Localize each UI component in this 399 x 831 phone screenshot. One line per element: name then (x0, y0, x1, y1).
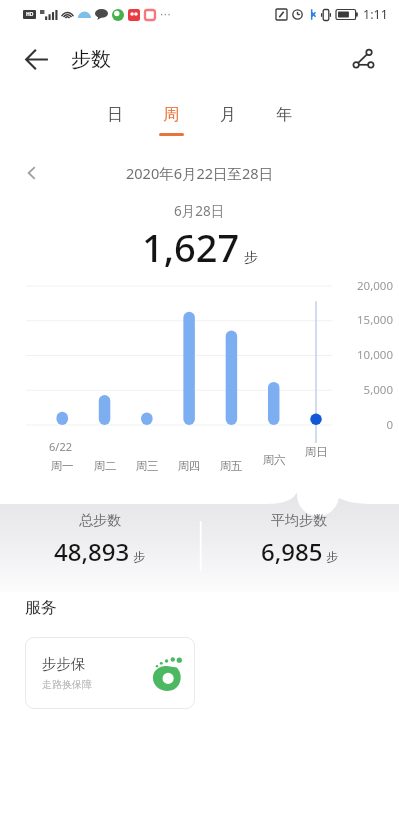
staticText: 周六 (257, 453, 291, 467)
staticText: 年 (276, 105, 292, 125)
staticText: 0 (336, 417, 393, 433)
button[interactable]: 步步保 (25, 637, 195, 709)
staticText: 10,000 (336, 347, 393, 363)
staticText: 步 (133, 549, 145, 564)
staticText: 20,000 (336, 278, 393, 294)
staticText: 步步保 (42, 655, 86, 673)
staticText: 2020年6月22日至28日 (126, 163, 274, 183)
button[interactable]: 日 (96, 102, 134, 139)
button[interactable]: Share (341, 37, 385, 81)
staticText: 5,000 (336, 382, 393, 398)
staticText: 周二 (88, 459, 122, 473)
staticText: 日 (107, 105, 123, 125)
staticText: 步数 (71, 47, 111, 72)
button[interactable]: 年 (265, 102, 303, 139)
staticText: 步 (326, 549, 338, 564)
staticText: 1,627 (142, 221, 240, 273)
button[interactable]: 周 (152, 102, 190, 139)
staticText: 服务 (25, 598, 57, 618)
staticText: 周 (163, 105, 179, 125)
button[interactable]: 月 (209, 102, 247, 139)
staticText: 6,985 (261, 535, 323, 568)
staticText: 步 (244, 249, 258, 267)
staticText: 总步数 (79, 512, 121, 530)
staticText: 周五 (214, 459, 248, 473)
staticText: 15,000 (336, 312, 393, 328)
button[interactable]: Previous week (16, 157, 48, 189)
staticText: HD (26, 11, 34, 18)
staticText: 6月28日 (174, 202, 225, 220)
staticText: 48,893 (54, 535, 130, 568)
staticText: 1:11 (363, 6, 388, 23)
button[interactable]: Back (14, 37, 58, 81)
staticText: 周日 (299, 445, 333, 459)
staticText: 周三 (130, 459, 164, 473)
staticText: 周一 (45, 459, 79, 473)
staticText: 周四 (172, 459, 206, 473)
staticText: 走路换保障 (42, 678, 92, 691)
staticText: 6/22 (49, 439, 72, 454)
staticText: ⋯ (160, 8, 171, 21)
staticText: 平均步数 (271, 512, 327, 530)
staticText: 月 (220, 105, 236, 125)
